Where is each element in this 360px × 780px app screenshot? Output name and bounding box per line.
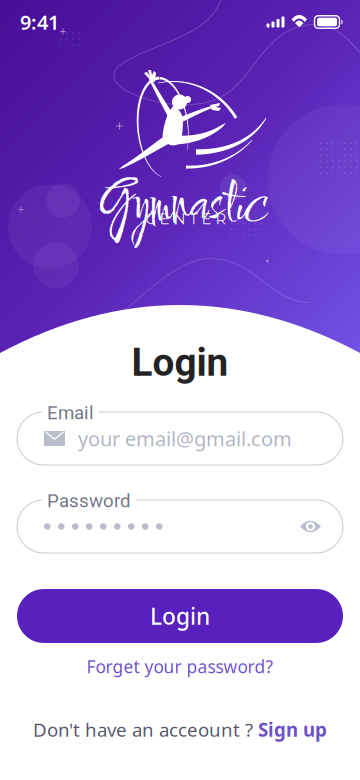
staticText: 9:41	[20, 9, 59, 35]
button[interactable]: Don't have an acceount ?	[0, 708, 360, 751]
staticText: your email@gmail.com	[78, 425, 292, 452]
staticText: Gymnastic	[100, 168, 267, 249]
button[interactable]: Login	[17, 589, 343, 643]
staticText: C E N T E R	[145, 210, 226, 228]
staticText: Password	[47, 490, 131, 512]
staticText: Don't have an acceount ?	[33, 717, 253, 742]
staticText: Login	[131, 340, 228, 385]
staticText: Sign up	[258, 717, 327, 742]
staticText: Forget your password?	[86, 655, 273, 678]
button[interactable]: Forget your password?	[0, 648, 360, 685]
staticText: Email	[47, 402, 94, 424]
staticText: Login	[150, 601, 210, 631]
